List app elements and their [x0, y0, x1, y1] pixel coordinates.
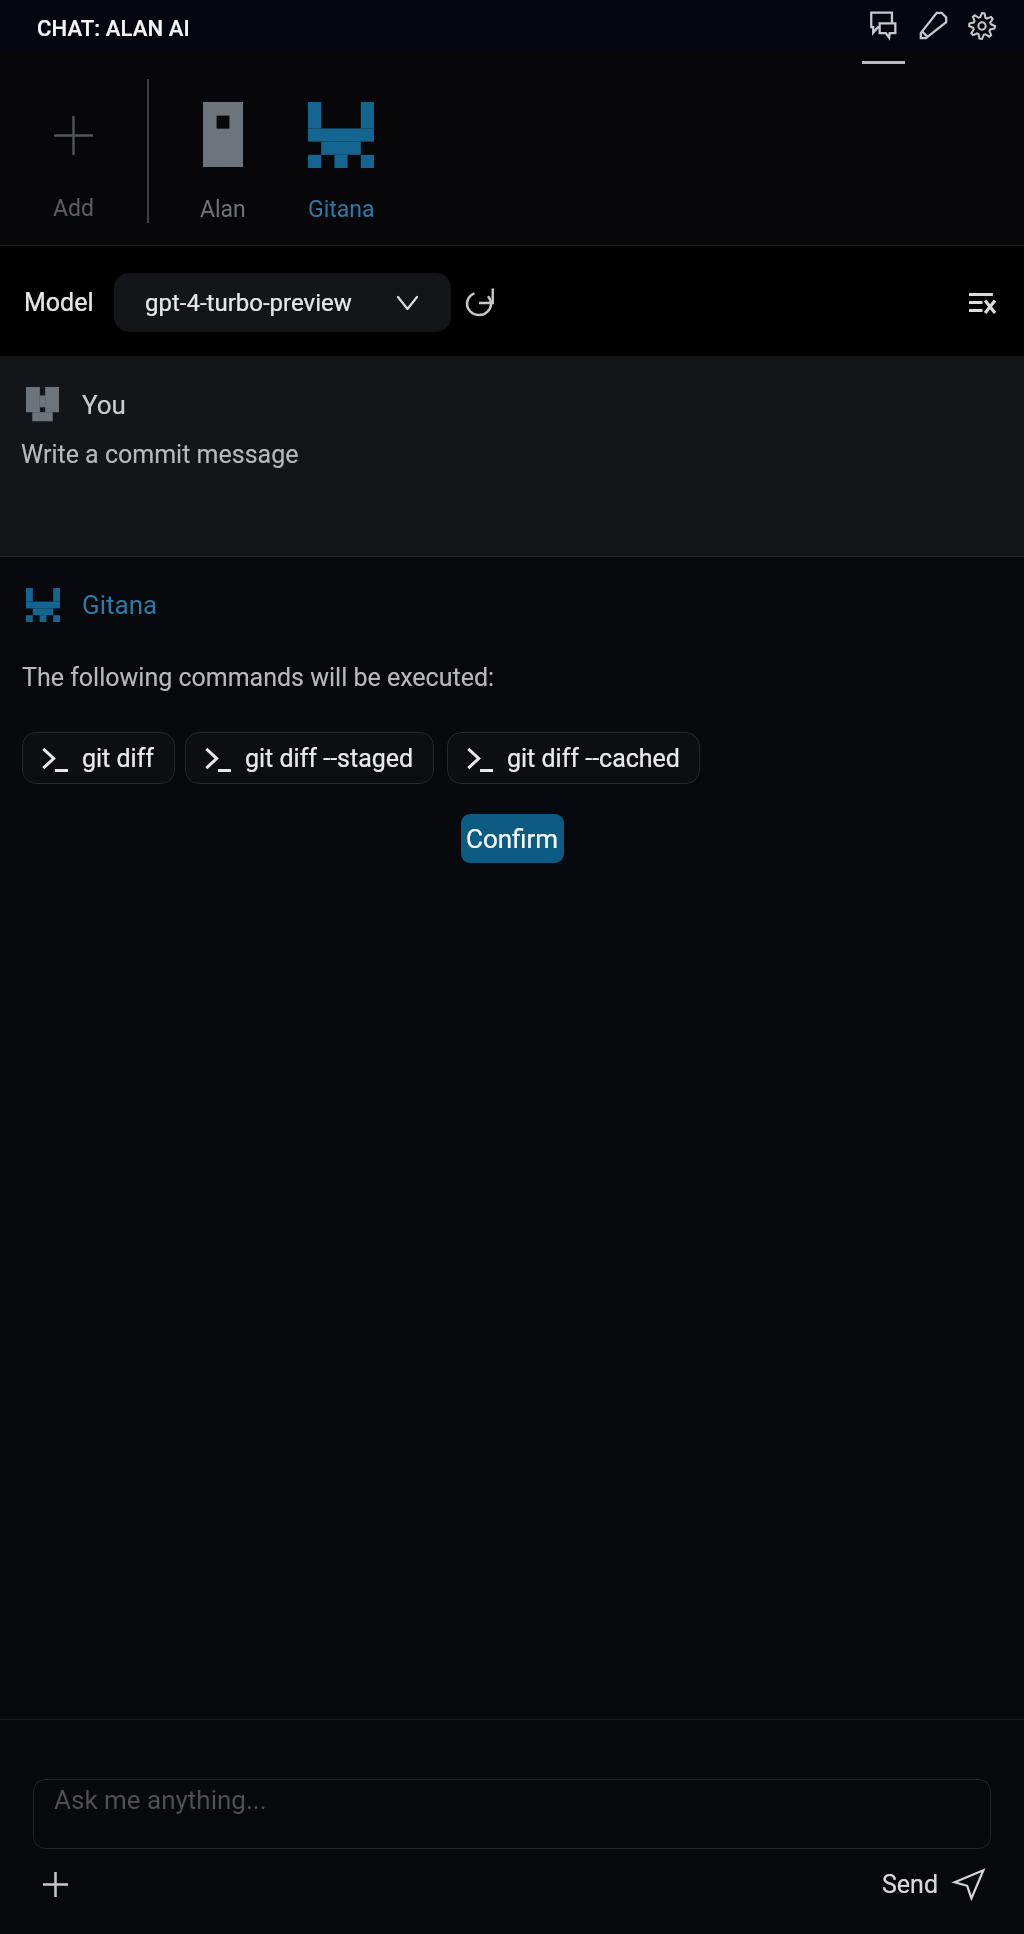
button[interactable]: Send	[882, 1869, 984, 1899]
staticText: CHAT: ALAN AI	[37, 16, 190, 42]
staticText: Add	[53, 195, 94, 222]
staticText: Confirm	[466, 824, 559, 854]
button[interactable]: Add	[0, 51, 147, 246]
staticText: Send	[882, 1870, 939, 1899]
button[interactable]: Chats	[857, 0, 909, 51]
button[interactable]: Edit	[909, 0, 957, 51]
staticText: Gitana	[308, 196, 375, 223]
button[interactable]: Add attachment	[33, 1862, 77, 1906]
staticText: git diff	[82, 744, 155, 773]
button[interactable]: gpt-4-turbo-preview	[114, 273, 451, 332]
button[interactable]: Settings	[957, 0, 1007, 51]
staticText: git diff --cached	[507, 744, 680, 773]
staticText: git diff --staged	[245, 744, 414, 773]
button[interactable]: git diff	[22, 732, 175, 784]
button[interactable]: git diff --cached	[447, 732, 700, 784]
button[interactable]: git diff --staged	[185, 732, 434, 784]
button[interactable]: Alan	[148, 51, 298, 246]
button[interactable]: Ask me anything...	[33, 1779, 991, 1849]
staticText: Model	[24, 288, 94, 317]
staticText: gpt-4-turbo-preview	[145, 289, 352, 317]
button[interactable]: Confirm	[461, 814, 564, 863]
staticText: Ask me anything...	[54, 1785, 267, 1815]
button[interactable]: Gitana	[267, 51, 415, 246]
staticText: You	[82, 390, 126, 420]
button[interactable]: Clear chat	[955, 275, 1009, 329]
staticText: Write a commit message	[21, 440, 299, 469]
button[interactable]: Regenerate	[452, 276, 506, 330]
staticText: Gitana	[82, 590, 158, 620]
staticText: The following commands will be executed:	[22, 663, 495, 692]
staticText: Alan	[200, 196, 246, 223]
